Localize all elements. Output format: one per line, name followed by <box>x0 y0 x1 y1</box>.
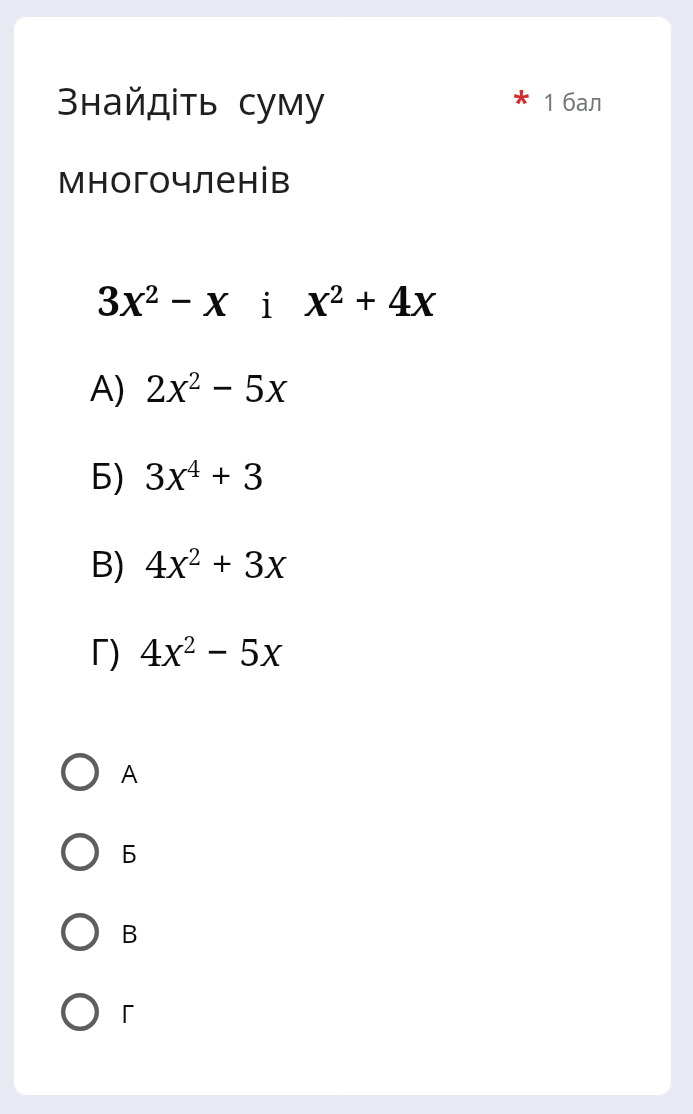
button[interactable]: Б <box>13 812 672 892</box>
button[interactable]: В) <box>13 518 672 606</box>
button[interactable]: А <box>13 732 672 812</box>
button[interactable]: А) <box>13 342 672 430</box>
staticText: В) <box>90 537 125 587</box>
button[interactable]: Б) <box>13 430 672 518</box>
staticText: А) <box>90 361 125 411</box>
staticText: Г) <box>90 625 120 675</box>
staticText: А <box>121 755 138 790</box>
staticText: 4x2 − 5x <box>140 624 283 677</box>
staticText: 3x4 + 3 <box>144 448 265 501</box>
staticText: Знайдіть суму <box>57 74 325 126</box>
staticText: Г <box>121 995 135 1030</box>
staticText: * <box>513 80 530 122</box>
button[interactable]: Г) <box>13 606 672 694</box>
staticText: 3x2 − x <box>97 272 229 328</box>
button[interactable]: В <box>13 892 672 972</box>
button[interactable]: Г <box>13 972 672 1052</box>
staticText: В <box>121 915 138 950</box>
staticText: x2 + 4x <box>305 272 437 328</box>
staticText: 1 бал <box>543 86 603 117</box>
staticText: Б <box>121 835 137 870</box>
staticText: многочленів <box>57 152 291 204</box>
staticText: і <box>261 282 273 328</box>
staticText: 4x2 + 3x <box>145 536 287 589</box>
staticText: Б) <box>90 449 124 499</box>
staticText: 2x2 − 5x <box>145 360 288 413</box>
